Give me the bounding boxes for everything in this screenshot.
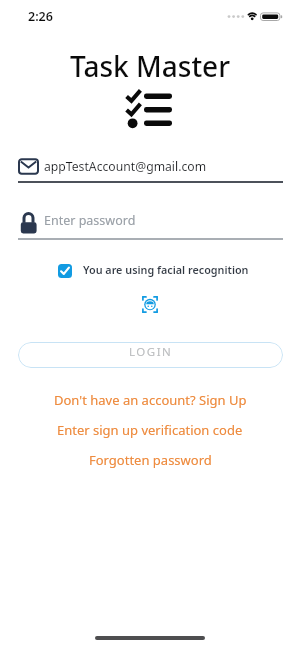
- staticText: appTestAccount@gmail.com: [44, 158, 207, 175]
- staticText: You are using facial recognition: [83, 262, 249, 277]
- button[interactable]: You are using facial recognition: [52, 256, 249, 282]
- button[interactable]: appTestAccount@gmail.com: [16, 152, 284, 180]
- staticText: Enter password: [44, 212, 136, 229]
- staticText: Forgotten password: [89, 451, 212, 469]
- button[interactable]: LOGIN: [18, 342, 283, 368]
- staticText: LOGIN: [129, 344, 173, 360]
- button[interactable]: Enter password: [16, 206, 284, 234]
- button[interactable]: Forgotten password: [0, 450, 300, 470]
- staticText: Enter sign up verification code: [57, 421, 243, 439]
- staticText: 2:26: [28, 8, 53, 24]
- staticText: Task Master: [70, 47, 231, 83]
- button[interactable]: Enter sign up verification code: [0, 420, 300, 440]
- staticText: Don't have an account? Sign Up: [54, 391, 247, 409]
- button[interactable]: Don't have an account? Sign Up: [0, 390, 300, 410]
- button[interactable]: [140, 294, 160, 314]
